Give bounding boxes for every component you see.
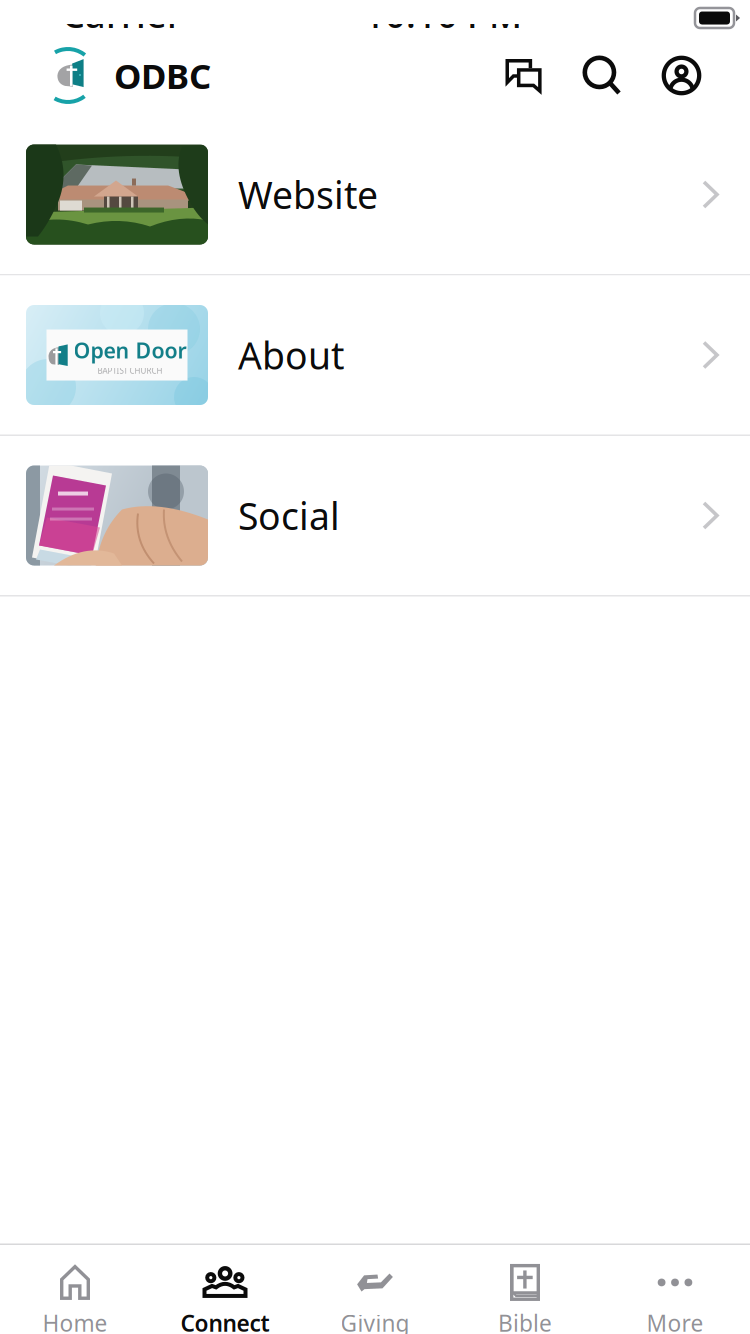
button[interactable]: Social bbox=[0, 436, 750, 595]
button[interactable]: Giving bbox=[300, 1244, 450, 1334]
button[interactable]: Account bbox=[642, 49, 721, 101]
button[interactable]: Search bbox=[563, 49, 642, 101]
staticText: More bbox=[646, 1308, 703, 1334]
staticText: Carrier bbox=[62, 0, 182, 38]
button[interactable]: Connect bbox=[150, 1244, 300, 1334]
staticText: Home bbox=[42, 1308, 107, 1334]
staticText: Bible bbox=[498, 1308, 552, 1334]
button[interactable]: Open Door bbox=[0, 275, 750, 434]
button[interactable]: Messages bbox=[484, 49, 563, 101]
staticText: Social bbox=[238, 491, 340, 540]
staticText: BAPTIST CHURCH bbox=[97, 365, 162, 376]
staticText: Open Door bbox=[73, 336, 186, 364]
button[interactable]: Home bbox=[0, 1244, 150, 1334]
staticText: About bbox=[238, 330, 344, 380]
staticText: ODBC bbox=[114, 52, 211, 98]
staticText: Giving bbox=[340, 1308, 409, 1334]
staticText: Connect bbox=[180, 1308, 269, 1334]
staticText: 10:10 PM bbox=[364, 0, 522, 38]
staticText: Website bbox=[238, 170, 378, 219]
button[interactable]: Website bbox=[0, 115, 750, 274]
button[interactable]: Bible bbox=[450, 1244, 600, 1334]
button[interactable]: More bbox=[600, 1244, 750, 1334]
